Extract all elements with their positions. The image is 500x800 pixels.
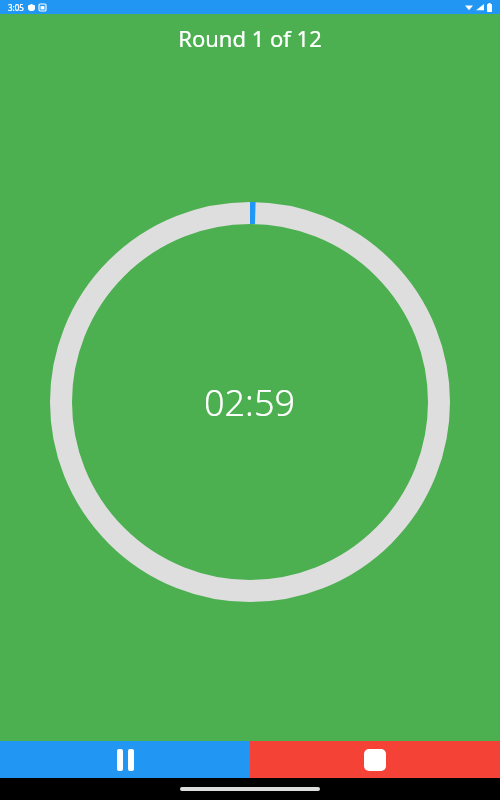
button[interactable]: Stop (250, 741, 500, 778)
staticText: 3:05 (8, 2, 24, 13)
button[interactable]: Pause (0, 741, 250, 778)
staticText: Round 1 of 12 (178, 23, 322, 53)
staticText: 02:59 (204, 378, 296, 427)
